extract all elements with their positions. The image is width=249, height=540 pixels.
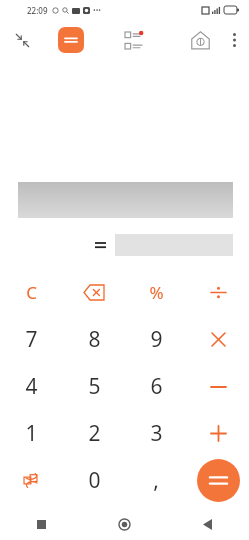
button[interactable]: 7 — [0, 316, 63, 363]
button[interactable]: 5 — [63, 363, 125, 410]
button[interactable] — [187, 269, 249, 316]
staticText: 3 — [150, 419, 163, 448]
button[interactable]: 0 — [63, 457, 125, 504]
staticText: , — [153, 466, 159, 495]
button[interactable]: 4 — [0, 363, 63, 410]
staticText: ••• — [93, 6, 101, 16]
button[interactable]: 1 — [0, 410, 63, 457]
button[interactable]: 9 — [125, 316, 187, 363]
button[interactable]: Converter — [0, 457, 63, 504]
staticText: 4 — [25, 372, 38, 401]
button[interactable]: 8 — [63, 316, 125, 363]
button[interactable]: 3 — [125, 410, 187, 457]
staticText: % — [149, 281, 164, 304]
button[interactable]: , — [125, 457, 187, 504]
button[interactable] — [187, 410, 249, 457]
staticText: 6 — [150, 372, 163, 401]
button[interactable]: C — [0, 269, 63, 316]
staticText: 1 — [25, 419, 38, 448]
staticText: 7 — [25, 325, 38, 354]
staticText: 8 — [88, 325, 101, 354]
button[interactable]: More options — [219, 20, 249, 60]
button[interactable]: 2 — [63, 410, 125, 457]
button[interactable] — [187, 363, 249, 410]
button[interactable]: Tasks — [116, 23, 150, 57]
staticText: 22:09 — [27, 5, 48, 16]
button[interactable]: Recents — [0, 508, 83, 540]
staticText: 9 — [150, 325, 163, 354]
button[interactable]: 6 — [125, 363, 187, 410]
button[interactable]: Back — [166, 508, 249, 540]
button[interactable] — [187, 316, 249, 363]
staticText: C — [26, 281, 37, 304]
button[interactable]: Collapse — [0, 20, 44, 60]
button[interactable]: Mortgage — [183, 23, 217, 57]
button[interactable]: Equals — [197, 459, 240, 502]
staticText: 0 — [88, 466, 101, 495]
staticText: 2 — [88, 419, 101, 448]
button[interactable]: Home — [83, 508, 166, 540]
button[interactable]: Equals — [187, 457, 249, 504]
staticText: 5 — [88, 372, 101, 401]
button[interactable]: % — [125, 269, 187, 316]
button[interactable]: Backspace — [63, 269, 125, 316]
button[interactable]: Calculator — [58, 27, 84, 53]
